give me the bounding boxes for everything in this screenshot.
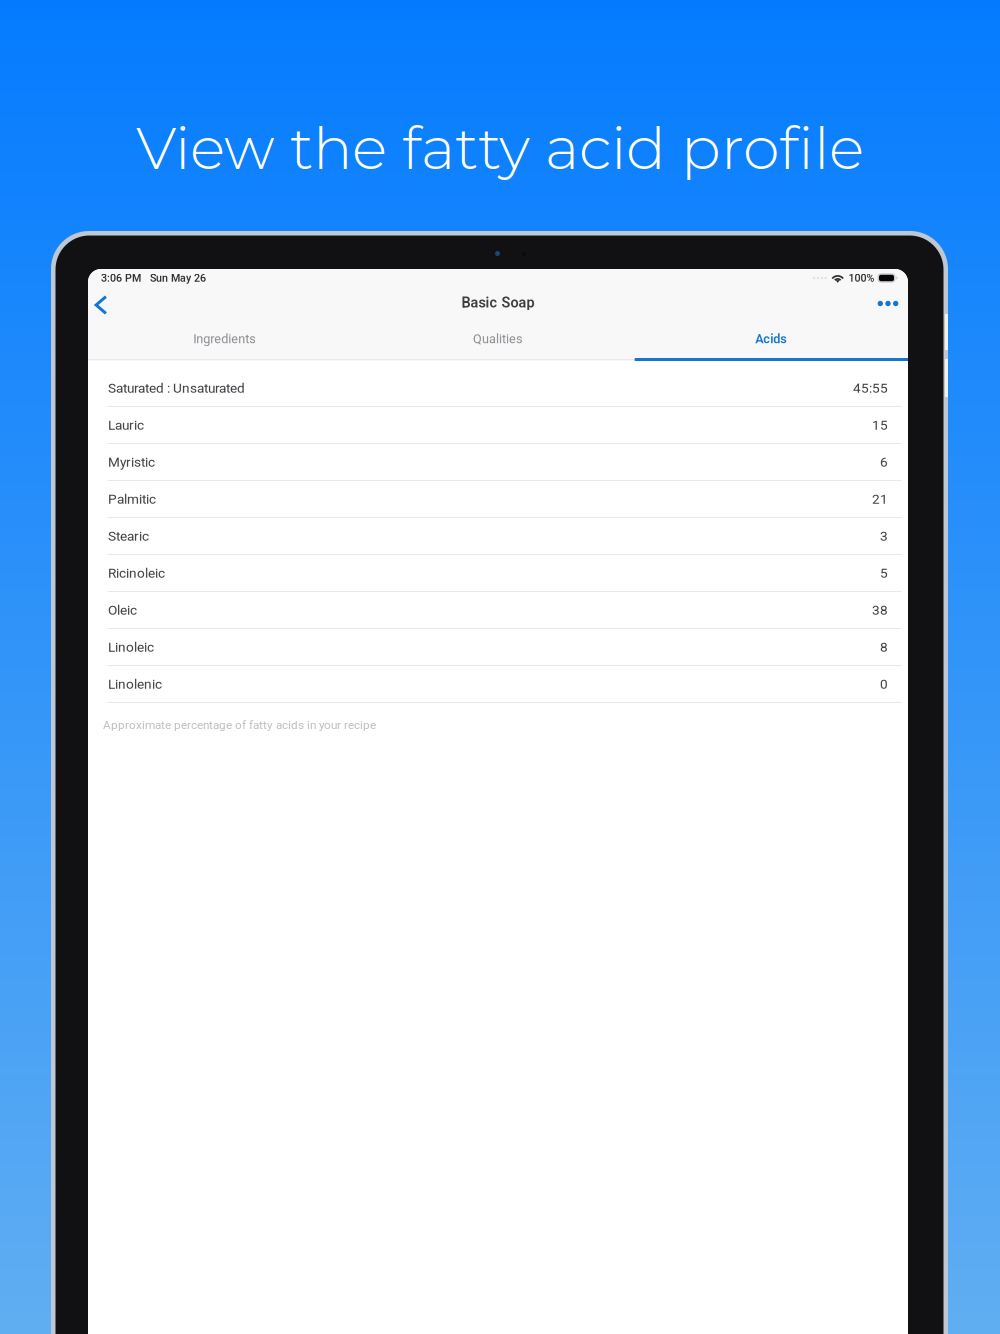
- staticText: Linoleic: [108, 639, 154, 655]
- button[interactable]: Stearic: [88, 518, 908, 555]
- staticText: 38: [872, 602, 888, 618]
- staticText: Approximate percentage of fatty acids in…: [103, 718, 376, 732]
- staticText: 5: [880, 565, 888, 581]
- staticText: 100%: [848, 272, 874, 284]
- staticText: Lauric: [108, 417, 144, 433]
- button[interactable]: Oleic: [88, 592, 908, 629]
- staticText: Palmitic: [108, 491, 156, 507]
- staticText: 6: [880, 454, 888, 470]
- staticText: View the fatty acid profile: [136, 112, 864, 184]
- button[interactable]: Lauric: [88, 407, 908, 444]
- staticText: Saturated : Unsaturated: [108, 380, 245, 396]
- staticText: Acids: [755, 332, 787, 346]
- staticText: 3: [880, 528, 888, 544]
- staticText: 15: [872, 417, 888, 433]
- staticText: Linolenic: [108, 676, 162, 692]
- button[interactable]: Ingredients: [88, 323, 361, 358]
- staticText: Ricinoleic: [108, 565, 165, 581]
- button[interactable]: Acids: [635, 323, 908, 358]
- button[interactable]: Myristic: [88, 444, 908, 481]
- staticText: Sun May 26: [150, 272, 206, 284]
- staticText: Myristic: [108, 454, 155, 470]
- staticText: 21: [872, 491, 888, 507]
- staticText: Basic Soap: [461, 294, 534, 311]
- button[interactable]: Linoleic: [88, 629, 908, 666]
- staticText: Ingredients: [193, 332, 256, 346]
- staticText: Qualities: [473, 332, 523, 346]
- staticText: 45:55: [853, 380, 888, 396]
- button[interactable]: Palmitic: [88, 481, 908, 518]
- button[interactable]: Saturated : Unsaturated: [88, 370, 908, 407]
- button[interactable]: Qualities: [361, 323, 635, 358]
- staticText: 0: [880, 676, 888, 692]
- staticText: Oleic: [108, 602, 137, 618]
- staticText: Stearic: [108, 528, 149, 544]
- staticText: 3:06 PM: [101, 272, 141, 284]
- staticText: 8: [880, 639, 888, 655]
- button[interactable]: Back: [88, 290, 114, 320]
- button[interactable]: Ricinoleic: [88, 555, 908, 592]
- button[interactable]: More options: [868, 290, 908, 320]
- button[interactable]: Linolenic: [88, 666, 908, 703]
